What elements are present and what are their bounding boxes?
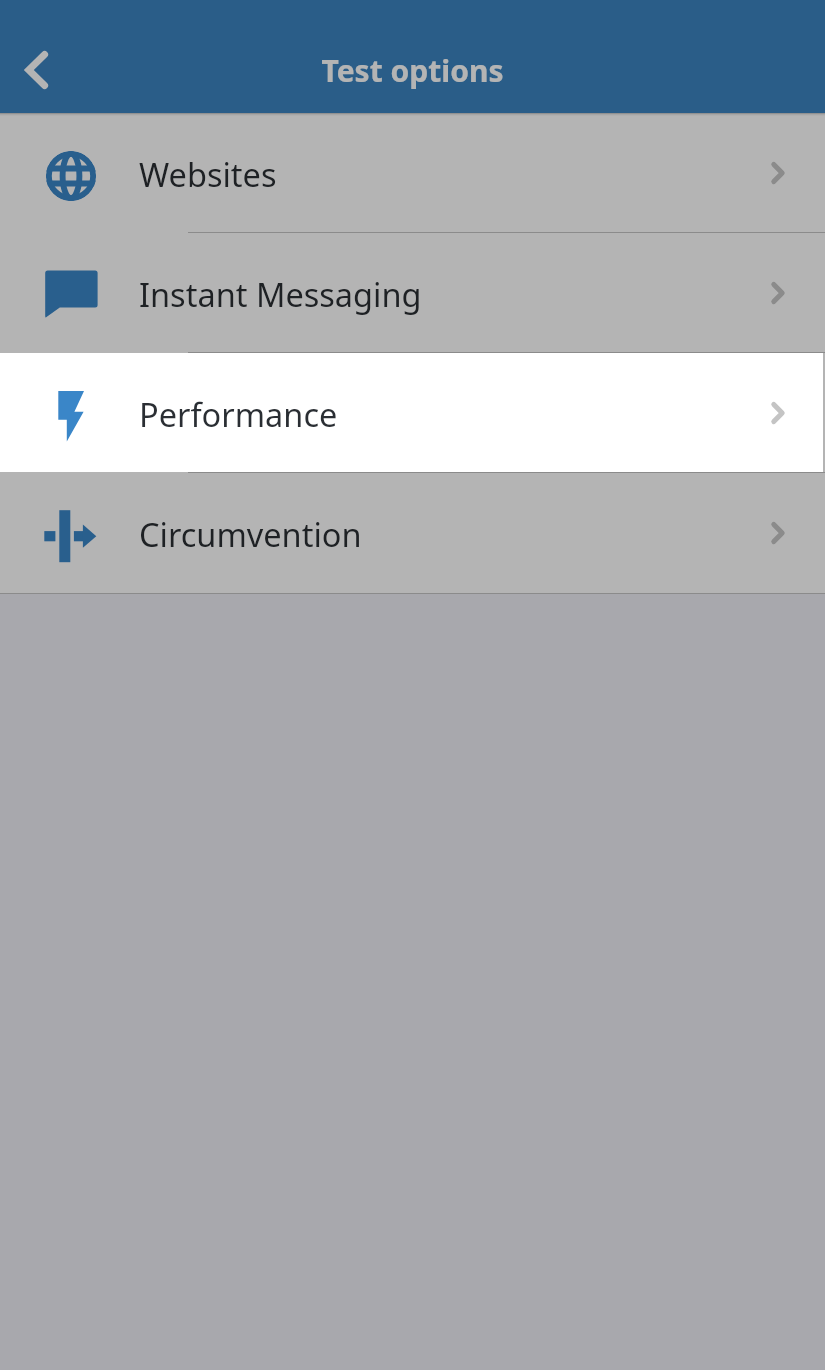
staticText: Websites bbox=[139, 152, 277, 196]
button[interactable]: Websites bbox=[0, 113, 825, 233]
staticText: Test options bbox=[321, 50, 504, 91]
staticText: Circumvention bbox=[139, 512, 362, 556]
button[interactable]: Circumvention bbox=[0, 473, 825, 593]
staticText: Instant Messaging bbox=[139, 272, 422, 316]
button[interactable]: Instant Messaging bbox=[0, 233, 825, 353]
staticText: Performance bbox=[139, 392, 338, 436]
button[interactable]: Back bbox=[0, 34, 72, 106]
button[interactable]: Performance bbox=[0, 353, 825, 473]
